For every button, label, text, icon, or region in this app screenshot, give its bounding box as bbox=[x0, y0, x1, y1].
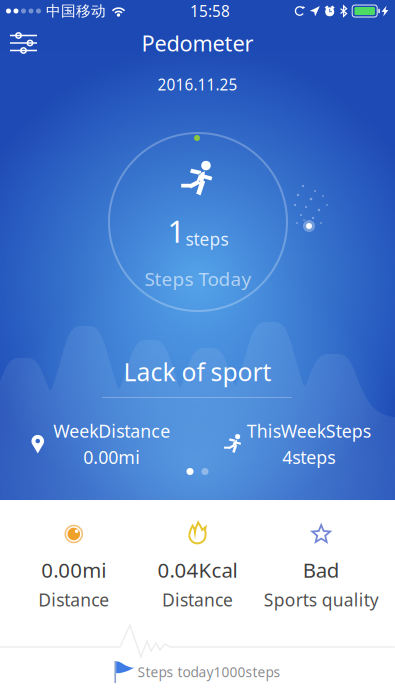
staticText: Steps today1000steps bbox=[137, 663, 280, 681]
staticText: steps bbox=[185, 227, 228, 251]
staticText: Bad bbox=[303, 556, 340, 584]
button[interactable]: Settings bbox=[0, 22, 47, 63]
button[interactable]: 0.04Kcal bbox=[136, 522, 259, 612]
button[interactable]: Bad bbox=[259, 522, 383, 612]
staticText: 1 bbox=[167, 210, 185, 252]
button[interactable]: WeekDistance bbox=[0, 422, 197, 466]
staticText: 0.00mi bbox=[83, 445, 140, 469]
staticText: Distance bbox=[162, 588, 233, 612]
staticText: 中国移动 bbox=[46, 2, 106, 20]
staticText: WeekDistance bbox=[53, 419, 170, 443]
button[interactable]: 0.00mi bbox=[12, 522, 136, 612]
staticText: 4steps bbox=[282, 445, 335, 469]
staticText: Steps Today bbox=[144, 266, 251, 292]
button[interactable]: Steps today1000steps bbox=[0, 655, 395, 689]
staticText: Lack of sport bbox=[123, 355, 271, 389]
staticText: 2016.11.25 bbox=[157, 74, 237, 95]
staticText: 0.00mi bbox=[41, 556, 106, 584]
staticText: 15:58 bbox=[190, 1, 230, 21]
staticText: ThisWeekSteps bbox=[247, 419, 371, 443]
staticText: 0.04Kcal bbox=[157, 556, 237, 584]
staticText: Distance bbox=[38, 588, 109, 612]
staticText: Pedometer bbox=[141, 28, 253, 58]
staticText: Sports quality bbox=[264, 588, 379, 612]
button[interactable]: ThisWeekSteps bbox=[197, 422, 395, 466]
